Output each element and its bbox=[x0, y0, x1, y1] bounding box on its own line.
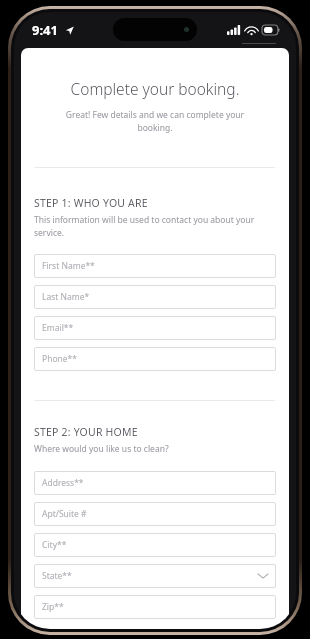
staticText: STEP 1: WHO YOU ARE bbox=[34, 196, 148, 210]
staticText: Address** bbox=[42, 477, 84, 489]
button[interactable]: Phone** bbox=[34, 347, 276, 371]
button[interactable]: Address** bbox=[34, 471, 276, 495]
staticText: This information will be used to contact… bbox=[34, 214, 276, 238]
button[interactable]: City** bbox=[34, 533, 276, 557]
staticText: Complete your booking. bbox=[34, 78, 276, 99]
other: Location active bbox=[65, 26, 74, 35]
button[interactable]: Last Name* bbox=[34, 285, 276, 309]
button[interactable]: Zip** bbox=[34, 595, 276, 619]
staticText: Last Name* bbox=[42, 291, 90, 303]
button[interactable]: Apt/Suite # bbox=[34, 502, 276, 526]
button[interactable]: Email** bbox=[34, 316, 276, 340]
staticText: First Name** bbox=[42, 260, 95, 272]
staticText: Phone** bbox=[42, 353, 77, 365]
staticText: City** bbox=[42, 539, 67, 551]
staticText: Zip** bbox=[42, 601, 64, 613]
button[interactable]: State** bbox=[34, 564, 276, 588]
staticText: Apt/Suite # bbox=[42, 508, 87, 520]
staticText: Email** bbox=[42, 322, 74, 334]
staticText: Great! Few details and we can complete y… bbox=[48, 109, 262, 134]
staticText: Where would you like us to clean? bbox=[34, 443, 169, 455]
staticText: State** bbox=[42, 570, 72, 582]
staticText: STEP 2: YOUR HOME bbox=[34, 425, 138, 439]
button[interactable]: First Name** bbox=[34, 254, 276, 278]
staticText: 9:41 bbox=[32, 21, 58, 39]
